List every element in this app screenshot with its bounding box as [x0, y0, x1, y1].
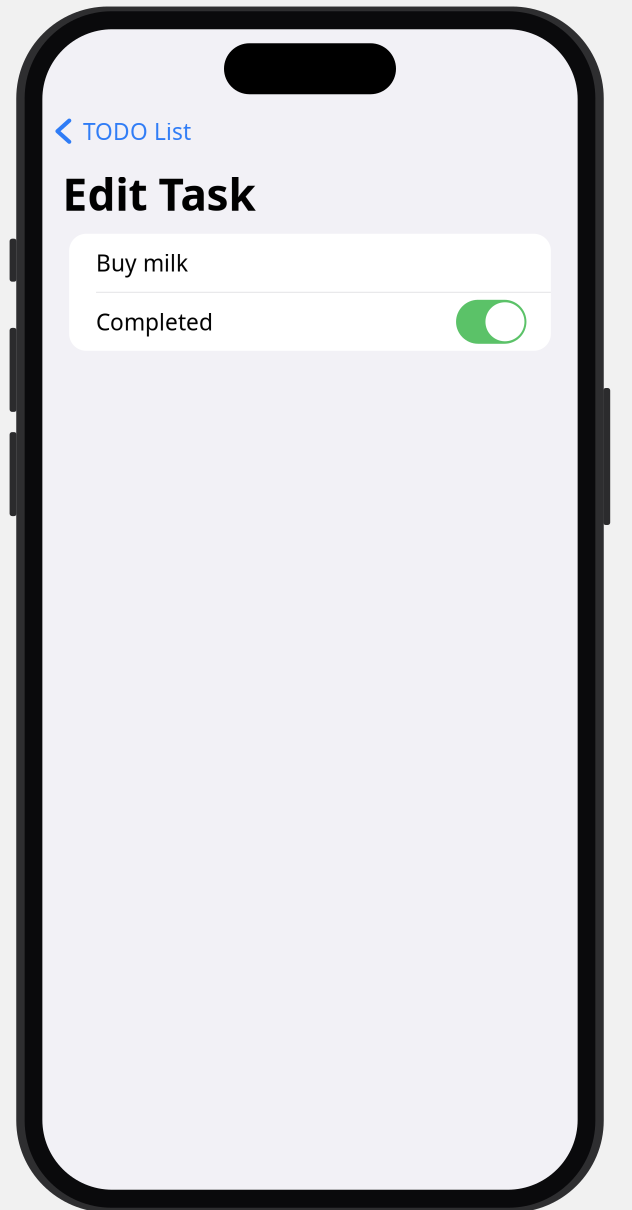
- staticText: Buy milk: [96, 248, 188, 278]
- button[interactable]: On: [69, 293, 551, 351]
- textField[interactable]: [69, 234, 551, 292]
- staticText: TODO List: [83, 116, 191, 146]
- staticText: Edit Task: [63, 164, 256, 223]
- button[interactable]: Buy milk: [69, 234, 551, 292]
- button[interactable]: TODO List: [42, 115, 201, 147]
- staticText: Completed: [96, 307, 213, 337]
